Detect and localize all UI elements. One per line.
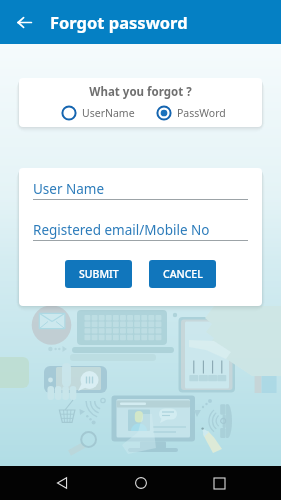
staticText: PassWord [177, 106, 226, 120]
button[interactable]: Recent apps [202, 466, 236, 500]
button[interactable]: Home [124, 466, 158, 500]
button[interactable]: UserName [61, 105, 135, 121]
staticText: UserName [82, 106, 135, 120]
staticText: CANCEL [163, 267, 203, 281]
button[interactable]: CANCEL [149, 260, 216, 288]
staticText: Forgot password [50, 11, 188, 33]
button[interactable]: Back [2, 0, 46, 44]
staticText: SUBMIT [79, 267, 119, 281]
button[interactable]: Back [45, 466, 79, 500]
button[interactable]: SUBMIT [65, 260, 132, 288]
staticText: What you forgot ? [19, 84, 262, 100]
staticText: Registered email/Mobile No [33, 221, 210, 239]
button[interactable]: PassWord [156, 105, 226, 121]
staticText: User Name [33, 180, 105, 198]
